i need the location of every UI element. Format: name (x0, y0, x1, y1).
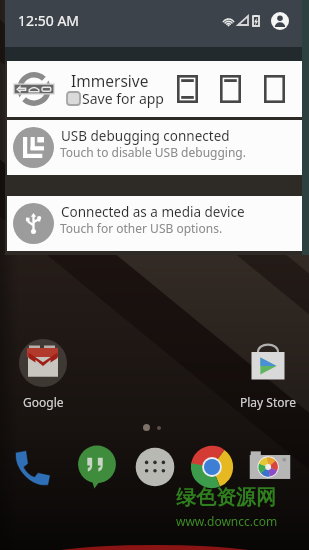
button[interactable]: Hide navigation bar (208, 67, 252, 111)
button[interactable]: Google (7, 338, 79, 410)
staticText: USB debugging connected (61, 127, 230, 145)
button[interactable]: Phone (7, 442, 57, 492)
button[interactable]: Camera (245, 442, 295, 492)
button[interactable]: USB debugging connected (7, 120, 302, 175)
button[interactable]: Hangouts (72, 442, 122, 492)
button[interactable]: Full immersive mode (252, 67, 296, 111)
staticText: Immersive (71, 70, 149, 91)
button[interactable]: Immersive (7, 61, 302, 117)
button[interactable]: Show status and navigation bars (165, 67, 209, 111)
staticText: 绿色资源网 (176, 485, 276, 510)
button[interactable]: All apps (130, 442, 180, 492)
staticText: Save for app (82, 89, 164, 108)
button[interactable]: Chrome (187, 442, 237, 492)
button[interactable]: Save for app (67, 89, 164, 108)
staticText: Play Store (240, 394, 296, 410)
staticText: Touch to disable USB debugging. (60, 144, 246, 160)
button[interactable]: User profile (271, 12, 289, 30)
staticText: 12:50 AM (18, 11, 80, 30)
button[interactable]: Connected as a media device (7, 196, 302, 251)
staticText: Touch for other USB options. (60, 220, 223, 236)
staticText: Connected as a media device (61, 203, 245, 221)
staticText: Google (23, 394, 64, 410)
button[interactable]: Play Store (232, 338, 304, 410)
staticText: www.downcc.com (176, 513, 278, 529)
